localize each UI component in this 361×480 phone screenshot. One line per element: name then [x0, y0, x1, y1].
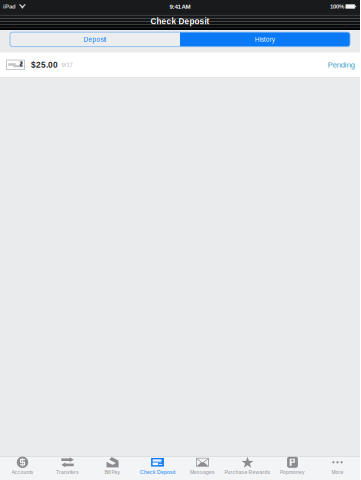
button[interactable]: Check Deposit	[135, 456, 180, 480]
staticText: 9/17	[62, 62, 73, 68]
staticText: More	[331, 469, 343, 475]
staticText: $25.00	[31, 60, 58, 69]
button[interactable]: $25.00	[0, 52, 360, 78]
staticText: Pending	[328, 61, 355, 69]
staticText: 100%	[330, 3, 344, 10]
button[interactable]: Deposit	[10, 32, 180, 47]
staticText: Popmoney	[280, 469, 305, 475]
button[interactable]: Purchase Rewards	[225, 456, 270, 480]
staticText: Transfers	[56, 469, 79, 475]
staticText: Bill Pay	[104, 469, 120, 475]
staticText: Check Deposit	[150, 17, 209, 26]
button[interactable]: History	[180, 32, 350, 47]
staticText: History	[255, 36, 275, 43]
button[interactable]: Popmoney	[270, 456, 315, 480]
staticText: Deposit	[83, 36, 106, 43]
staticText: iPad	[3, 3, 16, 10]
staticText: Purchase Rewards	[224, 469, 270, 475]
button[interactable]: Bill Pay	[90, 456, 135, 480]
button[interactable]: Accounts	[0, 456, 45, 480]
button[interactable]: More	[315, 456, 360, 480]
staticText: Check Deposit	[140, 469, 175, 475]
button[interactable]: Transfers	[45, 456, 90, 480]
staticText: 9:41 AM	[169, 3, 190, 10]
staticText: Accounts	[11, 469, 33, 475]
staticText: Messages	[190, 469, 215, 475]
button[interactable]: Messages	[180, 456, 225, 480]
